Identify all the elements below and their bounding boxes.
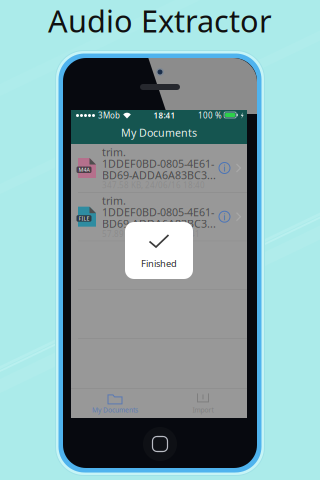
staticText: 100 % <box>198 110 222 121</box>
staticText: trim. <box>102 145 126 159</box>
staticText: 1DDEF0BD-0805-4E61- <box>102 205 214 219</box>
button[interactable]: My Documents <box>71 389 159 418</box>
staticText: FILE <box>78 215 89 222</box>
staticText: 347.58 KB, 24/06/16 18:40 <box>102 180 205 190</box>
staticText: i <box>223 162 226 174</box>
staticText: 18:41 <box>154 110 176 121</box>
staticText: 3Mob <box>98 110 120 121</box>
button[interactable]: Import <box>159 389 247 418</box>
button[interactable]: M4A <box>71 144 247 192</box>
button[interactable]: FILE <box>71 193 247 241</box>
staticText: BD69-ADDA6A83BC3... <box>102 217 216 231</box>
staticText: Import <box>192 405 213 414</box>
staticText: M4A <box>78 166 89 173</box>
staticText: 1DDEF0BD-0805-4E61- <box>102 156 214 171</box>
staticText: trim. <box>102 194 126 208</box>
staticText: My Documents <box>121 125 197 140</box>
staticText: i <box>223 210 226 223</box>
staticText: Audio Extractor <box>48 0 272 41</box>
staticText: Finished <box>141 257 177 270</box>
staticText: BD69-ADDA6A83BC3... <box>102 168 216 182</box>
staticText: My Documents <box>92 405 138 414</box>
staticText: 57.89 KB, 24/06/16 18:41 <box>102 229 200 239</box>
